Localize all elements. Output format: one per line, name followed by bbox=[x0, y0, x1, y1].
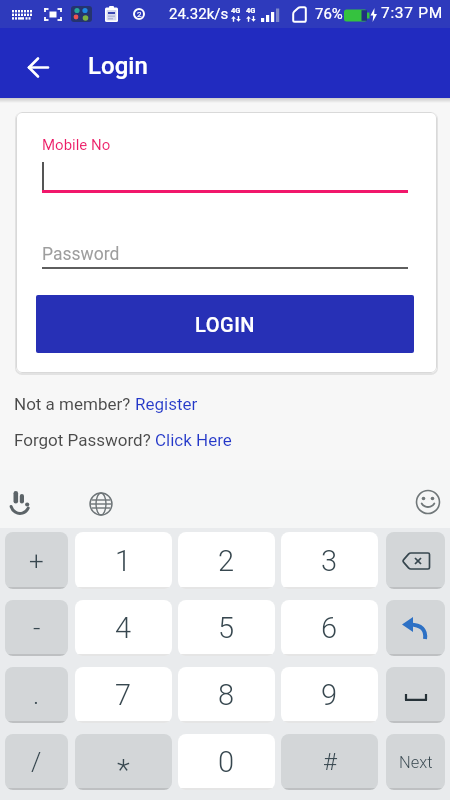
button[interactable]: Next bbox=[386, 734, 445, 790]
button[interactable]: 7 bbox=[75, 667, 172, 723]
staticText: 4G bbox=[231, 6, 241, 15]
button[interactable]: / bbox=[5, 734, 68, 790]
button[interactable]: + bbox=[5, 532, 68, 589]
button[interactable] bbox=[386, 600, 445, 656]
staticText: 1 bbox=[115, 544, 132, 578]
staticText: 9 bbox=[321, 678, 338, 712]
staticText: 6 bbox=[321, 611, 338, 645]
button[interactable]: 4 bbox=[75, 600, 172, 656]
staticText: 4G bbox=[246, 6, 256, 15]
button[interactable]: * bbox=[75, 734, 172, 790]
button[interactable] bbox=[10, 39, 66, 95]
button[interactable] bbox=[386, 667, 445, 723]
button[interactable]: 1 bbox=[75, 532, 172, 589]
staticText: 7 bbox=[115, 678, 132, 712]
button[interactable]: Register bbox=[135, 394, 198, 414]
staticText: Mobile No bbox=[42, 136, 111, 154]
staticText: 3 bbox=[321, 544, 338, 578]
staticText: 4 bbox=[115, 611, 132, 645]
staticText: Forgot Password? bbox=[14, 430, 155, 450]
staticText: 76% bbox=[315, 5, 343, 23]
staticText: 0 bbox=[218, 745, 235, 779]
button[interactable]: 6 bbox=[281, 600, 378, 656]
staticText: 5 bbox=[218, 611, 235, 645]
button[interactable] bbox=[9, 491, 33, 515]
staticText: 2 bbox=[218, 544, 235, 578]
staticText: + bbox=[29, 546, 44, 576]
staticText: - bbox=[33, 613, 41, 643]
button[interactable]: LOGIN bbox=[36, 295, 414, 353]
staticText: 24.32k/s bbox=[169, 5, 229, 23]
button[interactable]: . bbox=[5, 667, 68, 723]
staticText: Login bbox=[88, 52, 148, 80]
staticText: LOGIN bbox=[195, 313, 255, 336]
button[interactable]: # bbox=[281, 734, 378, 790]
button[interactable]: 0 bbox=[178, 734, 275, 790]
staticText: 2 bbox=[137, 10, 142, 19]
button[interactable] bbox=[89, 492, 113, 516]
button[interactable]: Click Here bbox=[155, 430, 232, 450]
staticText: / bbox=[31, 747, 42, 777]
button[interactable]: 9 bbox=[281, 667, 378, 723]
staticText: Not a member? bbox=[14, 394, 135, 414]
button[interactable]: 2 bbox=[178, 532, 275, 589]
staticText: Next bbox=[399, 753, 433, 772]
button[interactable] bbox=[415, 489, 441, 515]
button[interactable]: 5 bbox=[178, 600, 275, 656]
button[interactable] bbox=[386, 532, 445, 589]
staticText: . bbox=[33, 680, 40, 710]
staticText: * bbox=[117, 752, 130, 787]
staticText: Password bbox=[42, 244, 120, 265]
button[interactable]: 8 bbox=[178, 667, 275, 723]
staticText: 7:37 PM bbox=[381, 4, 443, 22]
staticText: # bbox=[323, 748, 337, 776]
button[interactable]: 3 bbox=[281, 532, 378, 589]
button[interactable]: - bbox=[5, 600, 68, 656]
staticText: 8 bbox=[218, 678, 235, 712]
